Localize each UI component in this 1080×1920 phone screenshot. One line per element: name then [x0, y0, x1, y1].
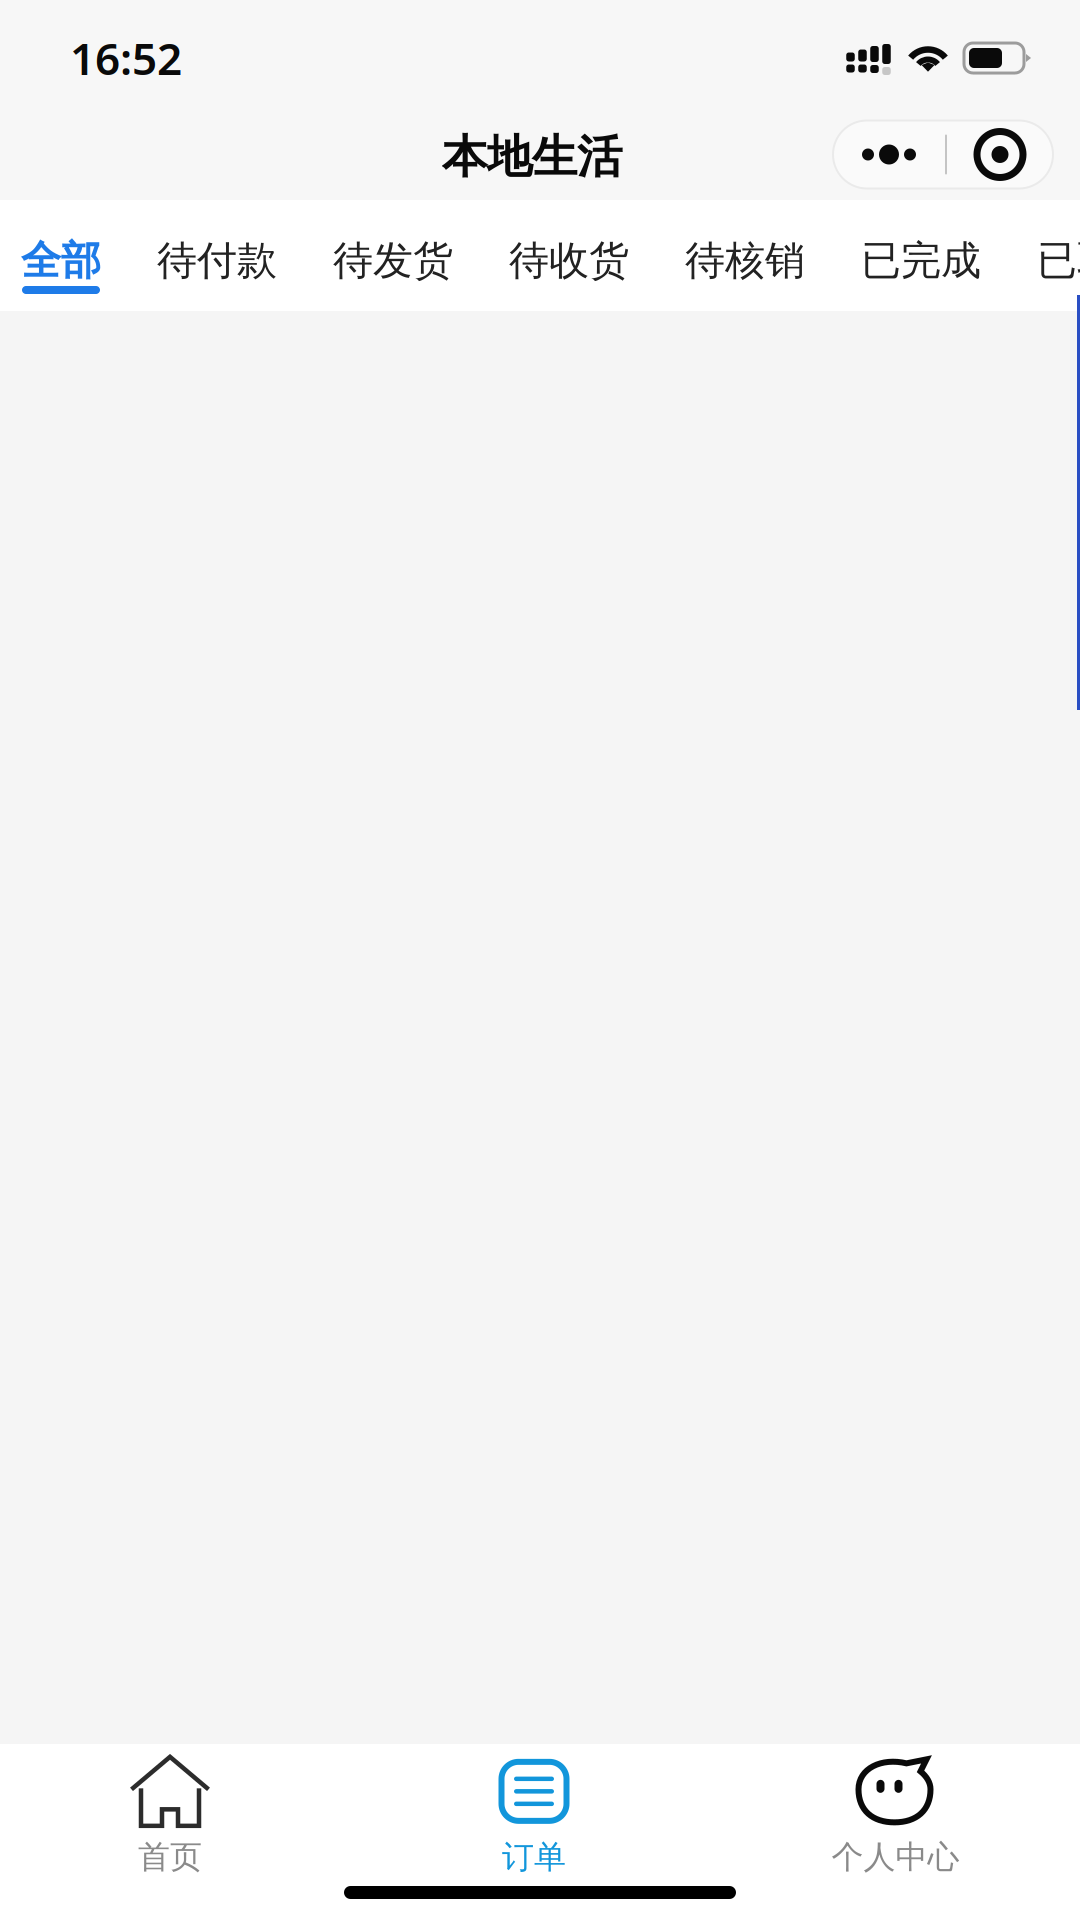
button[interactable]: 待核销: [685, 200, 805, 311]
staticText: 全部: [21, 236, 101, 285]
button[interactable]: 已完成: [861, 200, 981, 311]
button[interactable]: 订单: [340, 1744, 728, 1874]
button[interactable]: 待发货: [333, 200, 453, 311]
button[interactable]: 全部: [21, 200, 101, 311]
staticText: 个人中心: [831, 1837, 959, 1877]
staticText: 待发货: [333, 236, 453, 285]
button[interactable]: Close mini program: [947, 120, 1053, 188]
button[interactable]: More: [833, 120, 945, 188]
button[interactable]: 个人中心: [728, 1744, 1063, 1874]
staticText: 16:52: [70, 29, 182, 87]
button[interactable]: 首页: [0, 1744, 340, 1874]
staticText: 待付款: [157, 236, 277, 285]
staticText: 已取消: [1037, 236, 1080, 285]
button[interactable]: 待付款: [157, 200, 277, 311]
staticText: 已完成: [861, 236, 981, 285]
staticText: 订单: [502, 1837, 566, 1877]
button[interactable]: 待收货: [509, 200, 629, 311]
staticText: 首页: [138, 1837, 202, 1877]
staticText: 待收货: [509, 236, 629, 285]
staticText: 本地生活: [442, 129, 622, 185]
staticText: 待核销: [685, 236, 805, 285]
button[interactable]: 已取消: [1037, 200, 1080, 311]
